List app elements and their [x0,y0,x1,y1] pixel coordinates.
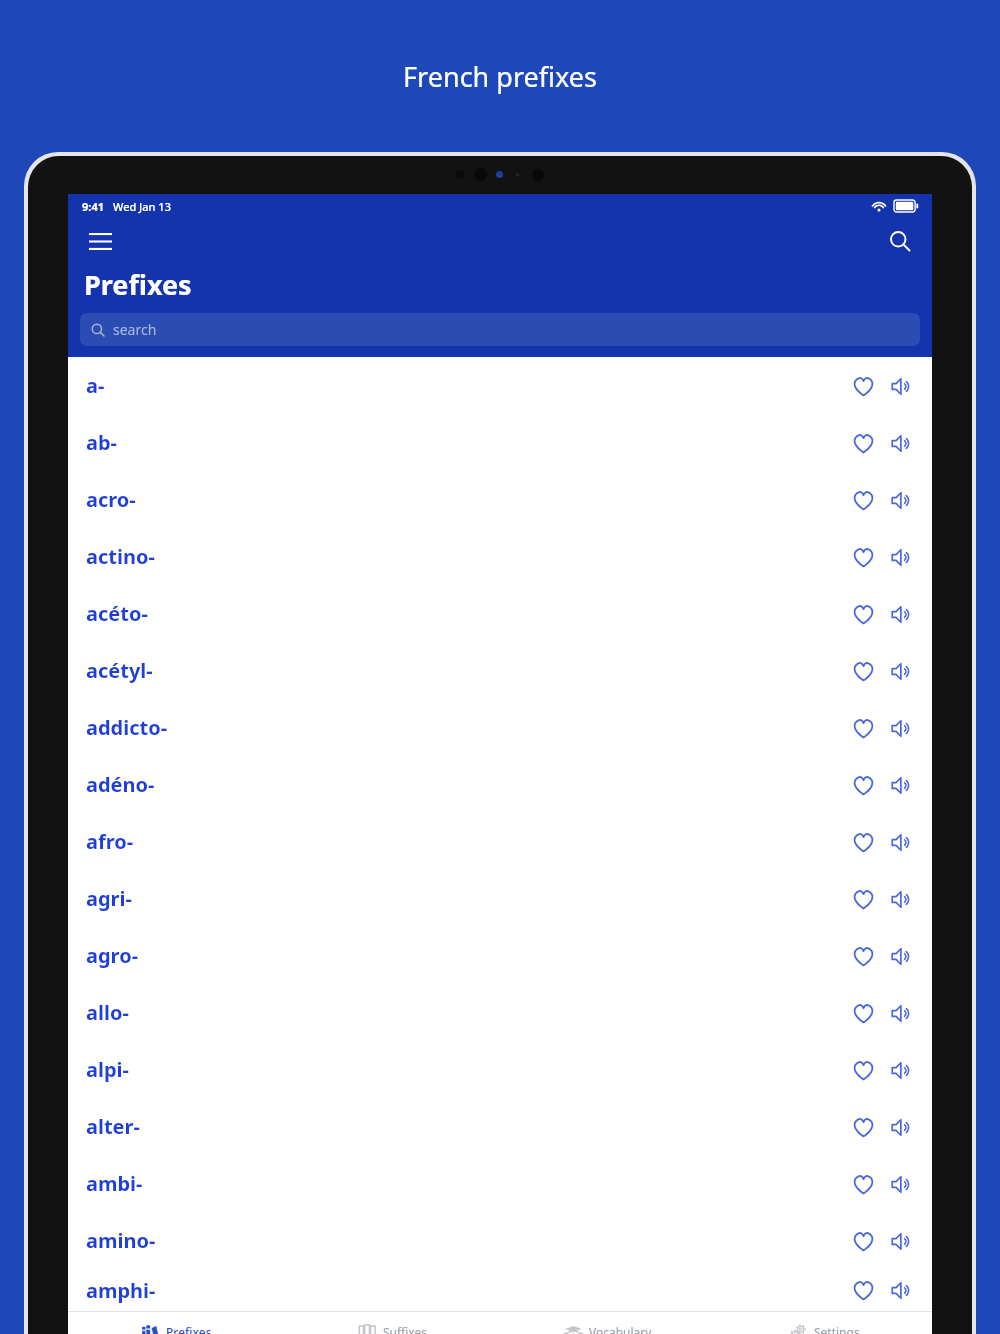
staticText: Prefixes [166,1324,212,1334]
button[interactable]: Add amphi- to favourites [846,1273,880,1307]
button[interactable]: amphi- [68,1269,932,1311]
button[interactable]: search [80,313,920,346]
button[interactable]: Pronounce amino- [884,1224,918,1258]
button[interactable]: Pronounce acétyl- [884,654,918,688]
button[interactable]: Add agro- to favourites [846,939,880,973]
button[interactable]: Add adéno- to favourites [846,768,880,802]
button[interactable]: Add a- to favourites [846,369,880,403]
staticText: amino- [86,1227,156,1254]
button[interactable]: Add afro- to favourites [846,825,880,859]
staticText: ambi- [86,1170,143,1197]
button[interactable]: ab- [68,414,932,471]
staticText: acéto- [86,600,148,627]
button[interactable]: Vocabulary [500,1312,716,1334]
staticText: Wed Jan 13 [113,199,171,214]
button[interactable]: Add alter- to favourites [846,1110,880,1144]
button[interactable]: addicto- [68,699,932,756]
staticText: search [113,320,157,339]
button[interactable]: alpi- [68,1041,932,1098]
staticText: 9:41 [82,199,104,214]
button[interactable]: Add ab- to favourites [846,426,880,460]
staticText: actino- [86,543,155,570]
button[interactable]: alter- [68,1098,932,1155]
staticText: allo- [86,999,129,1026]
button[interactable]: Add alpi- to favourites [846,1053,880,1087]
staticText: Prefixes [84,266,192,303]
button[interactable]: Open navigation menu [82,223,118,259]
button[interactable]: Settings [716,1312,932,1334]
button[interactable]: Add acétyl- to favourites [846,654,880,688]
staticText: Vocabulary [589,1324,652,1334]
button[interactable]: agri- [68,870,932,927]
button[interactable]: Pronounce alpi- [884,1053,918,1087]
button[interactable]: Pronounce agro- [884,939,918,973]
button[interactable]: a- [68,357,932,414]
button[interactable]: Pronounce afro- [884,825,918,859]
staticText: Suffixes [383,1324,427,1334]
button[interactable]: Pronounce allo- [884,996,918,1030]
button[interactable]: Pronounce ambi- [884,1167,918,1201]
button[interactable]: Add amino- to favourites [846,1224,880,1258]
button[interactable]: Add actino- to favourites [846,540,880,574]
staticText: acro- [86,486,136,513]
button[interactable]: Pronounce agri- [884,882,918,916]
button[interactable]: Add ambi- to favourites [846,1167,880,1201]
staticText: Settings [814,1324,860,1334]
button[interactable]: Add agri- to favourites [846,882,880,916]
staticText: a- [86,372,105,399]
button[interactable]: Pronounce a- [884,369,918,403]
button[interactable]: Add addicto- to favourites [846,711,880,745]
staticText: alter- [86,1113,140,1140]
button[interactable]: Pronounce acéto- [884,597,918,631]
staticText: French prefixes [0,58,1000,95]
button[interactable]: actino- [68,528,932,585]
button[interactable]: Pronounce adéno- [884,768,918,802]
button[interactable]: Search [882,223,918,259]
button[interactable]: acétyl- [68,642,932,699]
button[interactable]: Pronounce amphi- [884,1273,918,1307]
button[interactable]: Pronounce actino- [884,540,918,574]
staticText: adéno- [86,771,155,798]
staticText: agri- [86,885,132,912]
button[interactable]: Add allo- to favourites [846,996,880,1030]
button[interactable]: Suffixes [284,1312,500,1334]
button[interactable]: Pronounce alter- [884,1110,918,1144]
button[interactable]: acéto- [68,585,932,642]
staticText: ab- [86,429,118,456]
button[interactable]: Pronounce acro- [884,483,918,517]
button[interactable]: afro- [68,813,932,870]
button[interactable]: Pronounce ab- [884,426,918,460]
staticText: afro- [86,828,134,855]
button[interactable]: Pronounce addicto- [884,711,918,745]
button[interactable]: Add acéto- to favourites [846,597,880,631]
button[interactable]: Add acro- to favourites [846,483,880,517]
button[interactable]: allo- [68,984,932,1041]
button[interactable]: acro- [68,471,932,528]
button[interactable]: Prefixes [68,1312,284,1334]
button[interactable]: amino- [68,1212,932,1269]
staticText: acétyl- [86,657,153,684]
staticText: addicto- [86,714,168,741]
staticText: amphi- [86,1277,156,1304]
button[interactable]: ambi- [68,1155,932,1212]
staticText: alpi- [86,1056,129,1083]
staticText: agro- [86,942,139,969]
button[interactable]: agro- [68,927,932,984]
button[interactable]: adéno- [68,756,932,813]
